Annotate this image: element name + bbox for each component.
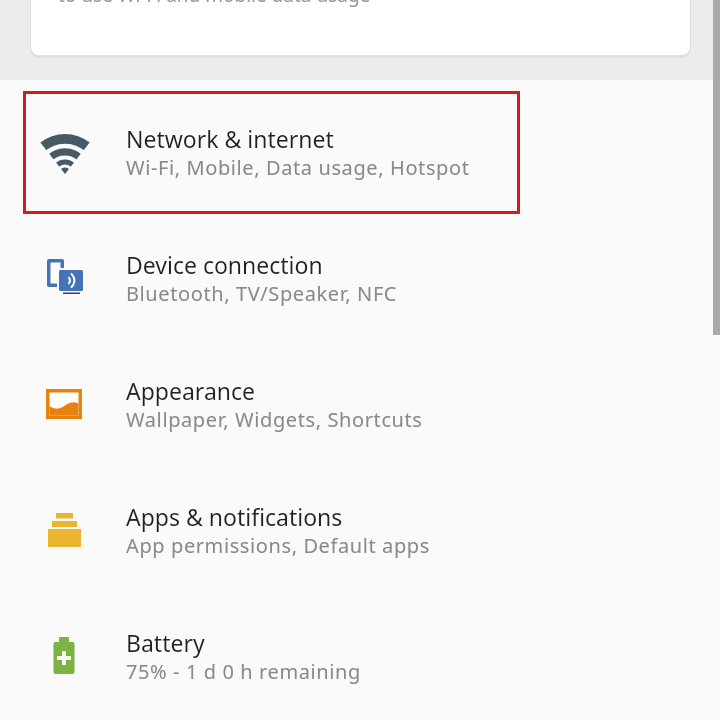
staticText: App permissions, Default apps	[126, 532, 430, 559]
button[interactable]: Battery	[0, 593, 720, 719]
staticText: Wi-Fi, Mobile, Data usage, Hotspot	[126, 154, 470, 181]
button[interactable]: Appearance	[0, 341, 720, 467]
staticText: Wallpaper, Widgets, Shortcuts	[126, 406, 423, 433]
staticText: Battery	[126, 627, 205, 658]
staticText: Apps & notifications	[126, 501, 343, 532]
button[interactable]: Network & internet	[0, 89, 720, 215]
button[interactable]: Device connection	[0, 215, 720, 341]
staticText: Appearance	[126, 375, 256, 406]
staticText: Bluetooth, TV/Speaker, NFC	[126, 280, 398, 307]
staticText: 75% - 1 d 0 h remaining	[126, 658, 361, 685]
staticText: Network & internet	[126, 123, 334, 154]
staticText: Device connection	[126, 249, 323, 280]
button[interactable]: Apps & notifications	[0, 467, 720, 593]
staticText: to use Wi-Fi and mobile data usage	[58, 0, 371, 8]
